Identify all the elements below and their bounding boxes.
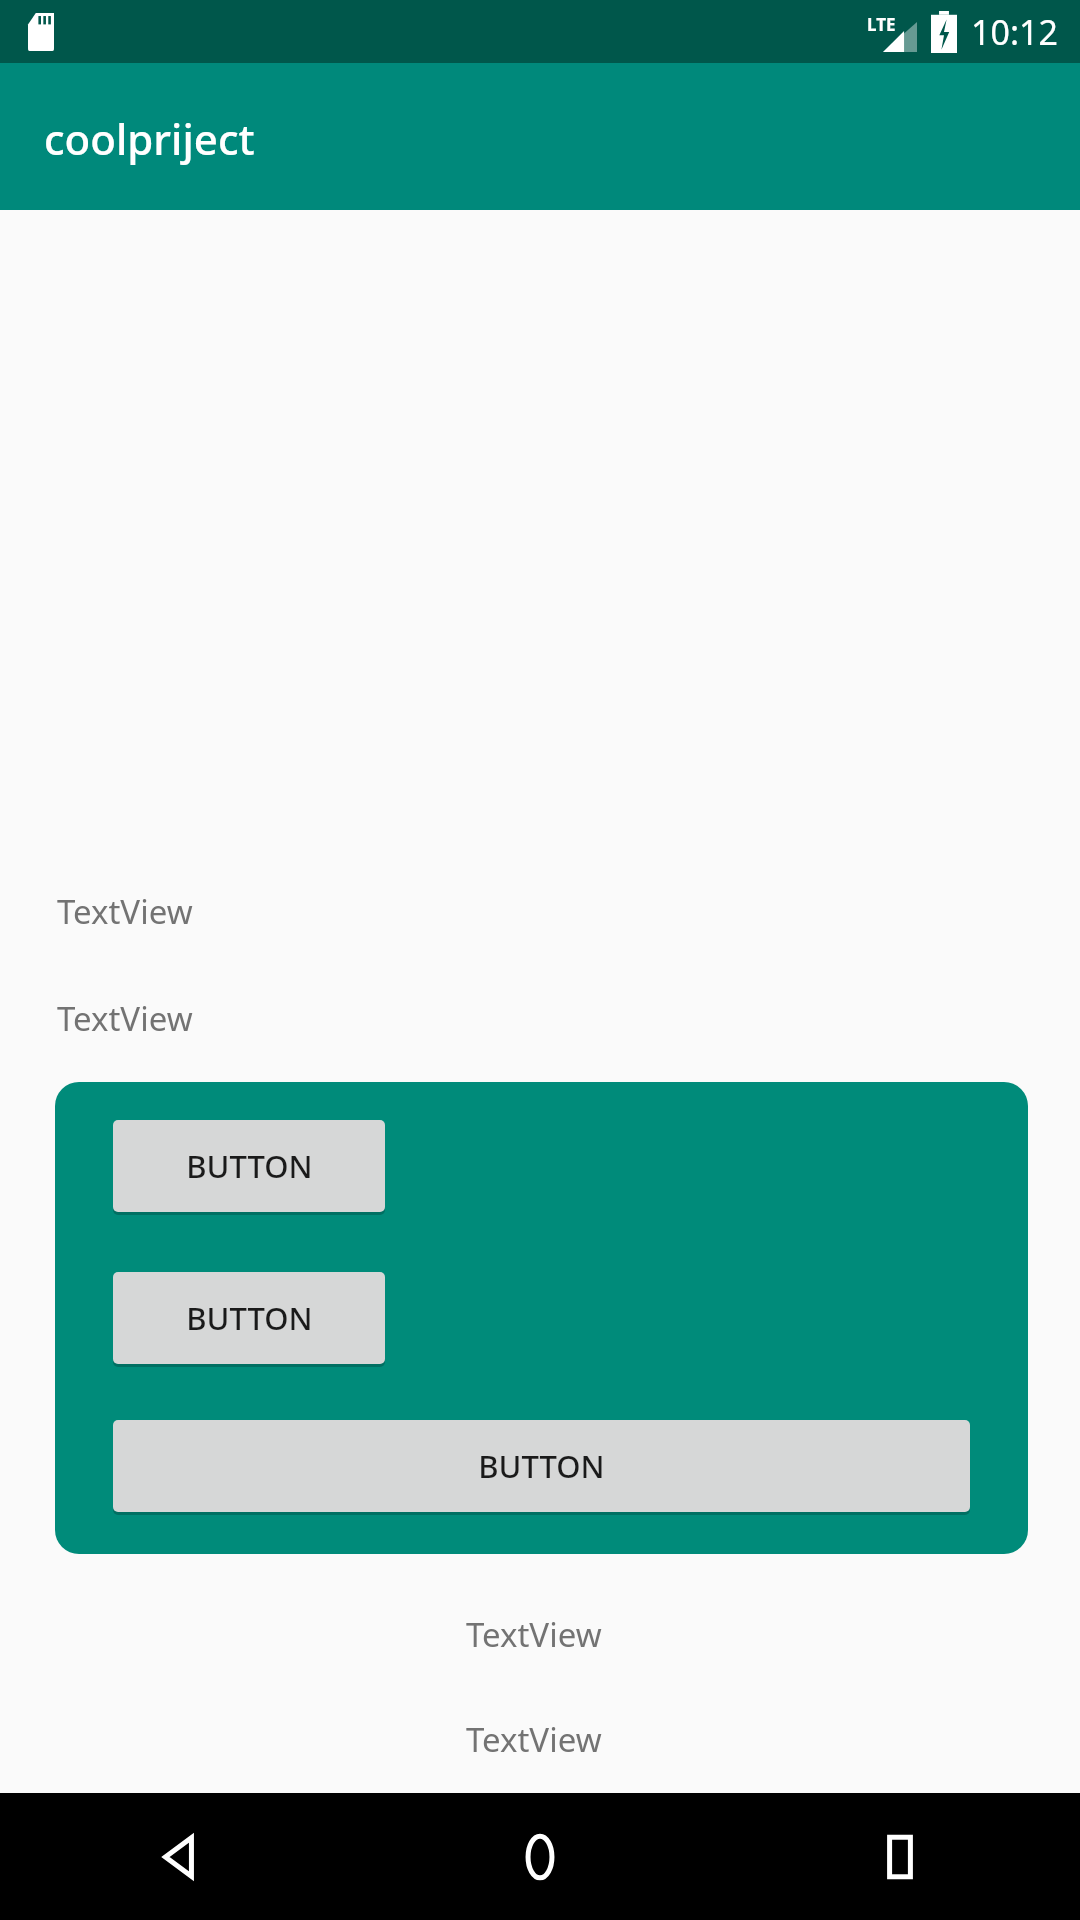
staticText: BUTTON bbox=[478, 1445, 605, 1487]
staticText: TextView bbox=[466, 1612, 602, 1657]
button[interactable]: Back bbox=[0, 1793, 360, 1920]
button[interactable]: BUTTON bbox=[113, 1420, 970, 1512]
button[interactable]: BUTTON bbox=[113, 1272, 385, 1364]
staticText: TextView bbox=[57, 996, 193, 1041]
staticText: TextView bbox=[57, 889, 193, 934]
staticText: BUTTON bbox=[186, 1145, 313, 1187]
staticText: coolpriject bbox=[44, 110, 255, 167]
button[interactable]: Home bbox=[360, 1793, 720, 1920]
button[interactable]: BUTTON bbox=[113, 1120, 385, 1212]
staticText: LTE bbox=[867, 13, 896, 36]
staticText: 10:12 bbox=[971, 9, 1058, 55]
staticText: TextView bbox=[466, 1717, 602, 1762]
button[interactable]: Recent apps bbox=[720, 1793, 1080, 1920]
staticText: BUTTON bbox=[186, 1297, 313, 1339]
